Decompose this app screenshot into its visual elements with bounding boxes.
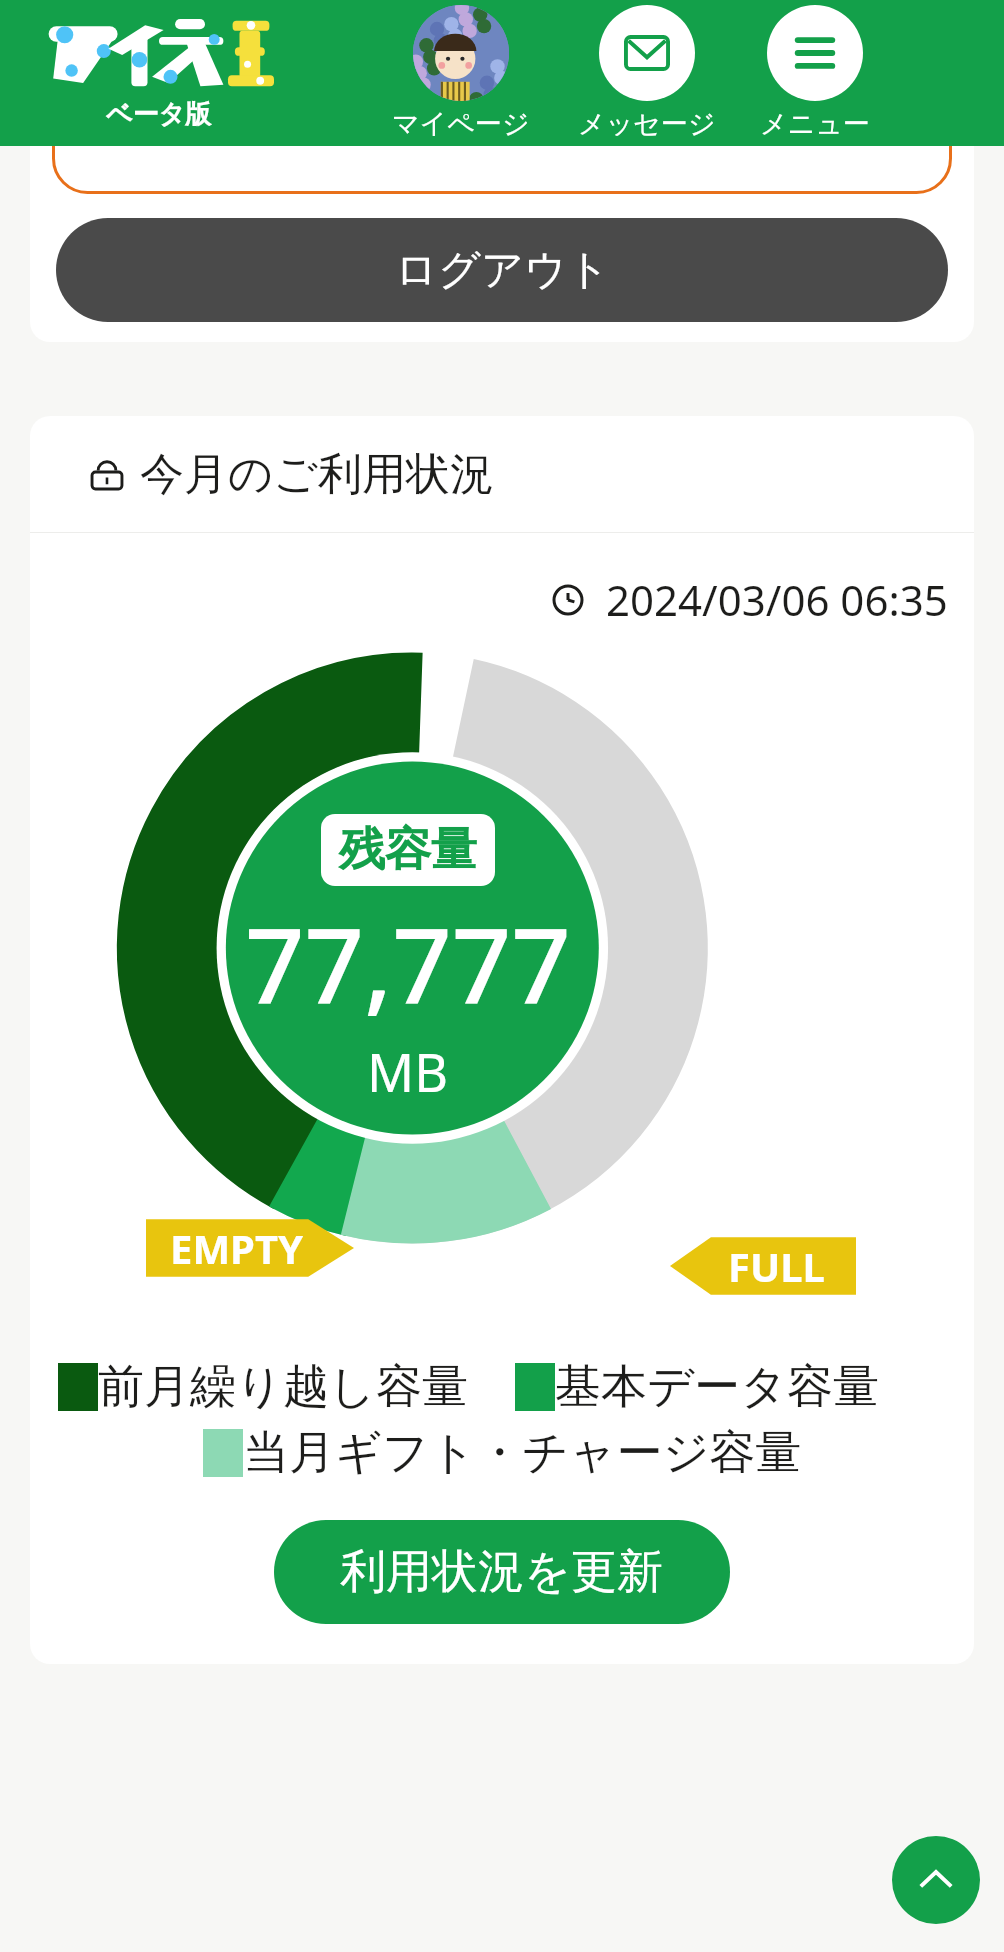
staticText: MB xyxy=(367,1036,448,1107)
staticText: 基本データ容量 xyxy=(555,1358,880,1416)
staticText: FULL xyxy=(728,1239,825,1293)
staticText: 当月ギフト・チャージ容量 xyxy=(243,1424,802,1482)
staticText: ベータ版 xyxy=(106,98,212,131)
staticText: 77,777 xyxy=(245,892,571,1034)
staticText: 2024/03/06 06:35 xyxy=(606,571,948,628)
staticText: メニュー xyxy=(760,107,870,141)
staticText: 利用状況を更新 xyxy=(340,1543,664,1601)
staticText: EMPTY xyxy=(170,1221,304,1275)
button[interactable]: ログアウト xyxy=(56,218,948,322)
button[interactable]: マイページ xyxy=(390,5,532,141)
staticText: 残容量 xyxy=(339,821,477,879)
staticText: 今月のご利用状況 xyxy=(140,447,495,502)
button[interactable]: Scroll to top xyxy=(892,1836,980,1924)
staticText: 前月繰り越し容量 xyxy=(98,1358,469,1416)
button[interactable]: マイネ王 home xyxy=(44,16,274,131)
staticText: マイページ xyxy=(392,107,530,141)
staticText: ログアウト xyxy=(395,244,610,297)
staticText: メッセージ xyxy=(578,107,716,141)
button[interactable]: メッセージ xyxy=(576,5,718,141)
button[interactable]: メニュー xyxy=(758,5,872,141)
button[interactable]: 利用状況を更新 xyxy=(274,1520,730,1624)
